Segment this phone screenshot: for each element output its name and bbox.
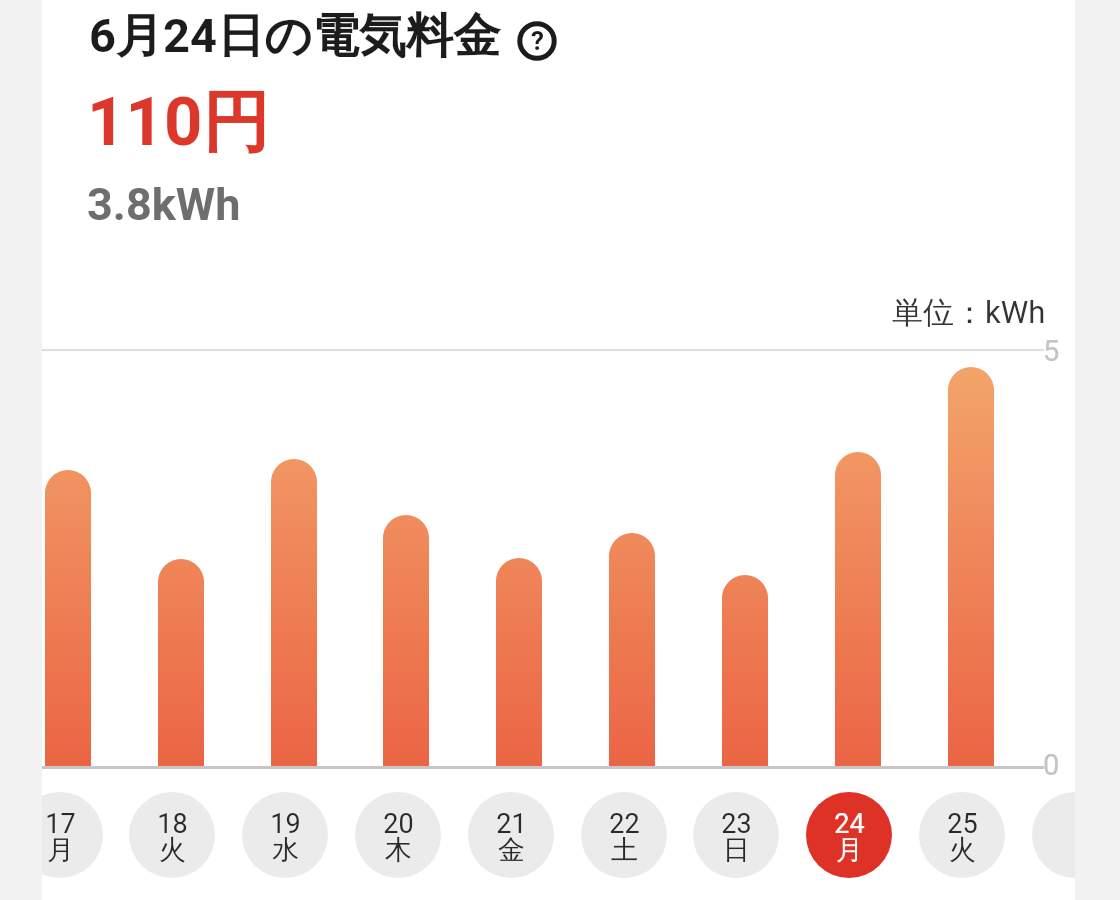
- button[interactable]: 20 木: [355, 792, 441, 878]
- button[interactable]: 17 月: [17, 792, 103, 878]
- button[interactable]: [1032, 792, 1118, 878]
- staticText: 19 水: [270, 808, 301, 867]
- staticText: 0: [1043, 748, 1060, 782]
- staticText: 18 火: [157, 808, 188, 867]
- staticText: 23 日: [721, 808, 752, 867]
- button[interactable]: 22 土: [581, 792, 667, 878]
- button[interactable]: 18 火: [129, 792, 215, 878]
- staticText: 17 月: [45, 808, 76, 867]
- staticText: 6月24日の電気料金: [89, 7, 500, 66]
- staticText: ?: [531, 26, 544, 56]
- staticText: 21 金: [496, 808, 527, 867]
- staticText: 110円: [87, 80, 270, 164]
- button[interactable]: 21 金: [468, 792, 554, 878]
- staticText: 単位：kWh: [892, 293, 1046, 332]
- button[interactable]: 25 火: [919, 792, 1005, 878]
- button[interactable]: ?: [515, 19, 559, 63]
- button[interactable]: 23 日: [693, 792, 779, 878]
- staticText: 3.8kWh: [87, 178, 241, 231]
- button[interactable]: 19 水: [242, 792, 328, 878]
- staticText: 24 月: [834, 808, 865, 867]
- staticText: 20 木: [383, 808, 414, 867]
- staticText: 25 火: [947, 808, 978, 867]
- staticText: 22 土: [609, 808, 640, 867]
- button[interactable]: 24 月: [806, 792, 892, 878]
- staticText: 5: [1043, 334, 1060, 368]
